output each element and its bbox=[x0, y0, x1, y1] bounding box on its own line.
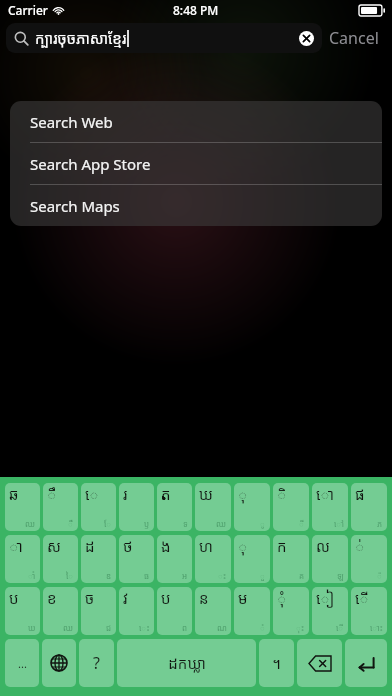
button[interactable]: ផ bbox=[351, 483, 387, 531]
button[interactable]: ហ bbox=[195, 535, 231, 583]
button[interactable]: Khmer period bbox=[259, 639, 294, 687]
button[interactable]: Switch language bbox=[42, 639, 76, 687]
staticText: ាំ bbox=[28, 570, 36, 581]
staticText: ភ bbox=[377, 518, 383, 529]
button[interactable]: ុ bbox=[234, 535, 270, 583]
button[interactable]: ិ bbox=[273, 483, 309, 531]
staticText: ប bbox=[9, 588, 19, 608]
staticText: ល bbox=[316, 536, 330, 556]
staticText: 8:48 PM bbox=[173, 2, 219, 18]
button[interactable]: ដ bbox=[81, 535, 116, 583]
button[interactable]: Clear text bbox=[299, 31, 314, 46]
staticText: ផ bbox=[355, 484, 365, 504]
staticText: ឈ bbox=[25, 518, 36, 529]
button[interactable]: ា bbox=[5, 535, 40, 583]
button[interactable]: ើ bbox=[351, 587, 387, 635]
staticText: ជ bbox=[106, 622, 112, 633]
staticText: ៃ bbox=[66, 570, 74, 581]
staticText: ? bbox=[93, 652, 100, 674]
button[interactable]: ក bbox=[273, 535, 309, 583]
button[interactable]: ង bbox=[157, 535, 192, 583]
button[interactable]: ខ bbox=[43, 587, 78, 635]
staticText: ហ bbox=[199, 536, 213, 556]
button[interactable]: Space bbox=[117, 639, 256, 687]
staticText: ច bbox=[85, 588, 95, 608]
staticText: ព bbox=[182, 622, 188, 633]
staticText: ឃ bbox=[28, 622, 36, 633]
staticText: Carrier bbox=[8, 2, 48, 18]
staticText: ប bbox=[161, 588, 171, 608]
button[interactable]: Backspace bbox=[297, 639, 342, 687]
staticText: រ bbox=[123, 484, 128, 504]
button[interactable]: Search App Store bbox=[10, 143, 382, 184]
staticText: ធ bbox=[144, 570, 150, 581]
button[interactable]: More symbols bbox=[5, 639, 39, 687]
staticText: ថ bbox=[123, 536, 133, 556]
button[interactable]: ក្បារចុចភាសាខ្មែរ bbox=[6, 23, 322, 53]
button[interactable]: ល bbox=[312, 535, 348, 583]
staticText: ់ bbox=[355, 536, 365, 556]
button[interactable]: េ bbox=[81, 483, 116, 531]
staticText: េះ bbox=[139, 622, 150, 633]
staticText: ោះ bbox=[370, 622, 383, 633]
button[interactable]: ច bbox=[81, 587, 116, 635]
button[interactable]: Search Maps bbox=[10, 185, 382, 226]
button[interactable]: Search Web bbox=[10, 101, 382, 142]
button[interactable]: ុំ bbox=[273, 587, 309, 635]
staticText: ណ bbox=[217, 622, 227, 633]
staticText: ក្បារចុចភាសាខ្មែរ bbox=[35, 28, 127, 48]
staticText: ខ bbox=[47, 588, 57, 608]
staticText: ឺ bbox=[68, 518, 74, 529]
button[interactable]: Question mark bbox=[79, 639, 114, 687]
button[interactable]: រ bbox=[119, 483, 154, 531]
staticText: ុះ bbox=[296, 622, 305, 633]
staticText: ... bbox=[18, 656, 27, 671]
staticText: ុ bbox=[238, 484, 248, 504]
button[interactable]: Return bbox=[345, 639, 387, 687]
staticText: វ bbox=[123, 588, 128, 608]
staticText: ឈ bbox=[216, 518, 227, 529]
staticText: ិ bbox=[277, 484, 287, 504]
staticText: ុ bbox=[238, 536, 248, 556]
staticText: ះ bbox=[218, 570, 227, 581]
button[interactable]: ស bbox=[43, 535, 78, 583]
button[interactable]: ប bbox=[5, 587, 40, 635]
button[interactable]: ់ bbox=[351, 535, 387, 583]
button[interactable]: ត bbox=[157, 483, 192, 531]
staticText: ដ bbox=[85, 536, 95, 556]
button[interactable]: ោ bbox=[312, 483, 348, 531]
button[interactable]: ប bbox=[157, 587, 192, 635]
staticText: ន bbox=[199, 588, 209, 608]
staticText: ៅ bbox=[334, 518, 344, 529]
staticText: ែ bbox=[104, 518, 112, 529]
staticText: ទ bbox=[183, 518, 188, 529]
button[interactable]: ៀ bbox=[312, 587, 348, 635]
button[interactable]: ថ bbox=[119, 535, 154, 583]
button[interactable]: ឃ bbox=[195, 483, 231, 531]
button[interactable]: ម bbox=[234, 587, 270, 635]
button[interactable]: ន bbox=[195, 587, 231, 635]
button[interactable]: ឆ bbox=[5, 483, 40, 531]
staticText: ឡ bbox=[337, 570, 344, 581]
staticText: អ bbox=[182, 570, 188, 581]
staticText: ឹ bbox=[47, 484, 57, 504]
staticText: ឈ bbox=[63, 622, 74, 633]
staticText: ស bbox=[47, 536, 61, 556]
staticText: ម bbox=[238, 588, 248, 608]
staticText: គ bbox=[299, 570, 305, 581]
staticText: ត bbox=[161, 484, 171, 504]
button[interactable]: ុ bbox=[234, 483, 270, 531]
button[interactable]: ឹ bbox=[43, 483, 78, 531]
staticText: ង bbox=[161, 536, 171, 556]
staticText: ឌ bbox=[106, 570, 112, 581]
staticText: េ bbox=[85, 484, 99, 504]
staticText: ក bbox=[277, 536, 287, 556]
button[interactable]: Cancel bbox=[322, 23, 386, 53]
button[interactable]: វ bbox=[119, 587, 154, 635]
staticText: ។ bbox=[272, 653, 281, 673]
staticText: ឫ bbox=[144, 518, 150, 529]
staticText: េី bbox=[336, 622, 344, 633]
staticText: ដកឃ្លា bbox=[168, 653, 206, 673]
staticText: Cancel bbox=[329, 27, 379, 49]
staticText: Search App Store bbox=[30, 154, 151, 174]
